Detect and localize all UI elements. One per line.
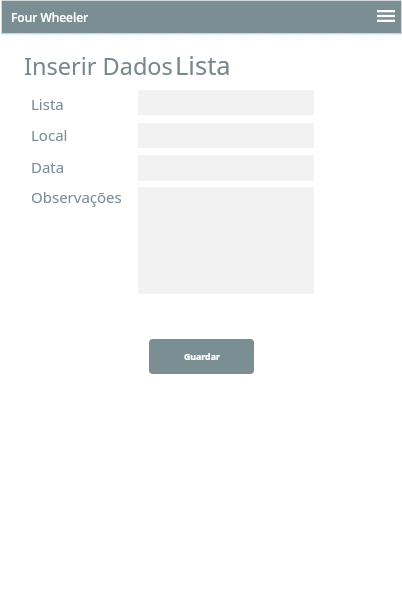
staticText: Local (31, 125, 68, 145)
button[interactable]: Menu (373, 3, 399, 29)
button[interactable]: Four Wheeler (2, 1, 401, 33)
staticText: Inserir Dados (24, 50, 173, 82)
staticText: Guardar (184, 351, 220, 363)
staticText: Lista (175, 48, 231, 83)
staticText: Data (31, 157, 65, 177)
button[interactable]: Guardar (149, 339, 254, 374)
staticText: Observações (31, 187, 122, 207)
staticText: Four Wheeler (11, 9, 89, 25)
staticText: Lista (31, 94, 64, 114)
